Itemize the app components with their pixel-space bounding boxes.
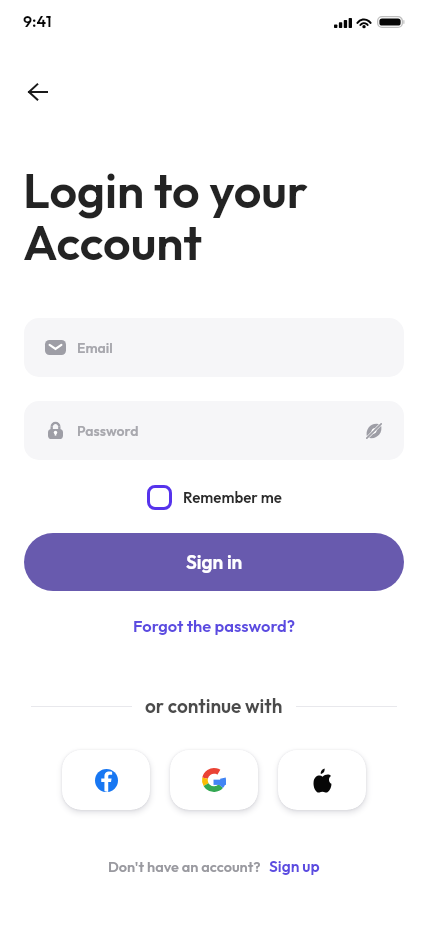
button[interactable]: Remember me <box>147 485 282 510</box>
button[interactable]: Sign up <box>269 856 320 876</box>
button[interactable]: Email <box>24 318 404 377</box>
staticText: Sign in <box>186 550 243 574</box>
staticText: Email <box>77 339 113 357</box>
button[interactable]: Password <box>24 401 404 460</box>
button[interactable]: Sign in <box>24 533 404 591</box>
button[interactable]: Back <box>14 68 62 116</box>
staticText: Don't have an account? <box>108 857 261 875</box>
button[interactable]: Sign in with Apple <box>278 750 366 810</box>
staticText: Remember me <box>183 488 282 507</box>
staticText: Password <box>77 422 139 440</box>
button[interactable]: Sign in with Facebook <box>62 750 150 810</box>
staticText: Forgot the password? <box>133 615 296 636</box>
staticText: Login to your Account <box>23 159 308 272</box>
button[interactable]: Sign in with Google <box>170 750 258 810</box>
staticText: or continue with <box>145 694 283 718</box>
button[interactable]: Show password <box>359 416 389 446</box>
button[interactable]: Forgot the password? <box>133 615 296 636</box>
staticText: 9:41 <box>23 11 52 31</box>
staticText: Sign up <box>269 856 320 876</box>
